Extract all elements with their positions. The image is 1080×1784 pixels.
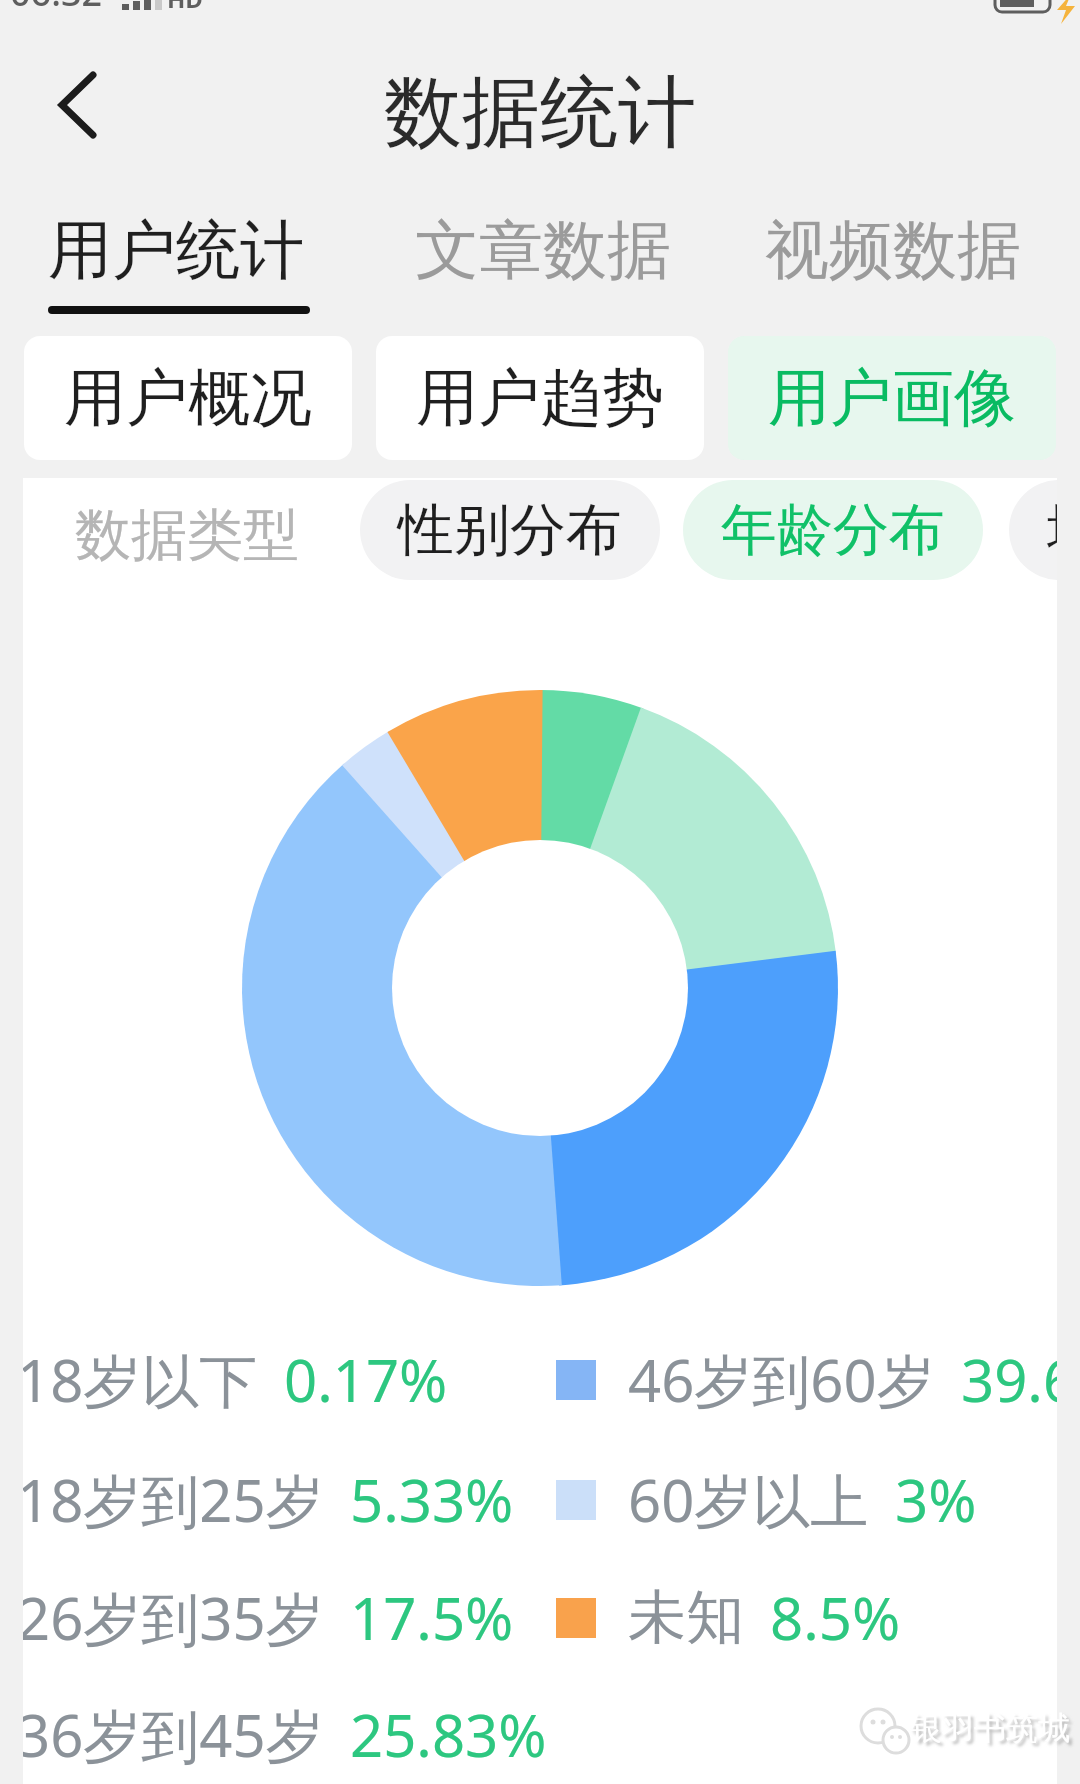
staticText: 8.5% xyxy=(770,1578,901,1657)
staticText: 数据统计 xyxy=(384,64,696,162)
staticText: 0.17% xyxy=(284,1340,448,1419)
staticText: 银羽书筑城 xyxy=(910,1708,1070,1748)
button[interactable]: 地域分布 xyxy=(1009,480,1057,580)
staticText: 3% xyxy=(895,1460,977,1539)
staticText: 5.33% xyxy=(350,1460,514,1539)
staticText: 36岁到45岁 xyxy=(23,1695,324,1774)
staticText: 60岁以上 xyxy=(628,1460,869,1539)
staticText: 用户统计 xyxy=(48,210,304,291)
button[interactable]: 用户统计 xyxy=(48,210,304,291)
button[interactable]: 年龄分布 xyxy=(683,480,983,580)
staticText: 18岁以下 xyxy=(23,1340,258,1419)
staticText: 46岁到60岁 xyxy=(628,1340,935,1419)
button[interactable]: 用户概况 xyxy=(24,336,352,460)
staticText: 06:32 xyxy=(10,0,103,17)
button[interactable]: 视频数据 xyxy=(765,210,1021,291)
button[interactable]: 用户画像 xyxy=(728,336,1056,460)
staticText: 18岁到25岁 xyxy=(23,1460,324,1539)
button[interactable]: 文章数据 xyxy=(415,210,671,291)
staticText: 17.5% xyxy=(350,1578,514,1657)
staticText: 数据类型 xyxy=(75,500,299,571)
staticText: 视频数据 xyxy=(765,210,1021,291)
staticText: 文章数据 xyxy=(415,210,671,291)
staticText: HD xyxy=(167,0,203,15)
staticText: 地域分布 xyxy=(1047,495,1057,566)
staticText: 年龄分布 xyxy=(721,495,945,566)
staticText: 用户趋势 xyxy=(416,359,664,437)
button[interactable]: 用户趋势 xyxy=(376,336,704,460)
staticText: 用户画像 xyxy=(768,359,1016,437)
staticText: 用户概况 xyxy=(64,359,312,437)
button[interactable]: 性别分布 xyxy=(360,480,660,580)
staticText: 性别分布 xyxy=(398,495,622,566)
button[interactable] xyxy=(40,60,130,150)
staticText: 39.67% xyxy=(961,1340,1057,1419)
staticText: 26岁到35岁 xyxy=(23,1578,324,1657)
staticText: 未知 xyxy=(628,1581,744,1654)
staticText: 25.83% xyxy=(350,1695,547,1774)
